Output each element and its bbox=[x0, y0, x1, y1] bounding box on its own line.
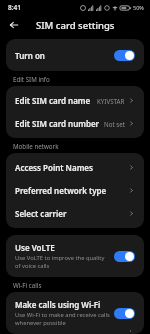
staticText: Use VoLTE to improve the quality of voic… bbox=[15, 254, 110, 270]
button[interactable]: Toggle Turn on bbox=[114, 50, 135, 61]
button[interactable]: Edit SIM card number bbox=[6, 112, 144, 135]
staticText: Edit SIM card number bbox=[15, 118, 104, 129]
staticText: Edit SIM card name bbox=[15, 95, 97, 106]
staticText: Access Point Names bbox=[15, 162, 128, 173]
staticText: 8:41 bbox=[8, 3, 21, 12]
staticText: Edit SIM info bbox=[13, 75, 50, 83]
staticText: SIM card settings bbox=[36, 19, 115, 32]
button[interactable]: Preferred network type bbox=[6, 179, 144, 202]
button[interactable]: Back bbox=[5, 16, 23, 34]
button[interactable]: Toggle Make calls using Wi-Fi bbox=[114, 308, 135, 319]
staticText: Select carrier bbox=[15, 208, 128, 219]
staticText: Use Wi-Fi to make and receive calls when… bbox=[15, 311, 110, 327]
staticText: Turn on bbox=[15, 50, 45, 61]
staticText: Wi-Fi calls bbox=[13, 281, 42, 289]
staticText: Make calls using Wi-Fi bbox=[15, 299, 101, 310]
button[interactable]: Turn on bbox=[6, 42, 144, 68]
button[interactable]: Use VoLTE bbox=[6, 238, 144, 274]
staticText: Use VoLTE bbox=[15, 242, 55, 253]
button[interactable]: Select carrier bbox=[6, 202, 144, 225]
staticText: Preferred network type bbox=[15, 185, 128, 196]
staticText: KYIVSTAR bbox=[97, 97, 125, 105]
staticText: 50% bbox=[133, 4, 144, 11]
staticText: Mobile network bbox=[13, 142, 59, 150]
button[interactable]: Make calls using Wi-Fi bbox=[6, 295, 144, 331]
button[interactable]: Access Point Names bbox=[6, 156, 144, 179]
button[interactable]: Edit SIM card name bbox=[6, 89, 144, 112]
button[interactable]: Toggle Use VoLTE bbox=[114, 251, 135, 262]
staticText: Not set bbox=[104, 120, 125, 128]
